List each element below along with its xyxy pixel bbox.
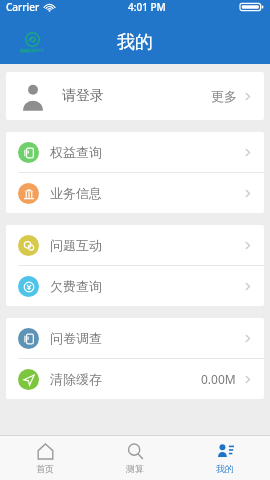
button[interactable]: 测算 (90, 436, 180, 480)
staticText: 测算 (126, 463, 144, 474)
staticText: 0.00M (201, 371, 236, 387)
staticText: 业务信息 (50, 185, 102, 201)
button[interactable]: 清除缓存 (6, 359, 264, 399)
staticText: 权益查询 (50, 144, 102, 160)
staticText: 我的 (216, 463, 234, 474)
staticText: Carrier (6, 0, 40, 14)
button[interactable]: 业务信息 (6, 173, 264, 213)
staticText: 我的 (117, 31, 153, 54)
staticText: 更多 (211, 88, 237, 104)
staticText: 问卷调查 (50, 330, 102, 346)
button[interactable]: 我的 (180, 436, 270, 480)
button[interactable]: 欠费查询 (6, 266, 264, 306)
staticText: 首页 (36, 463, 54, 474)
staticText: 海南社保中心 (20, 48, 44, 53)
staticText: 清除缓存 (50, 371, 102, 387)
button[interactable]: 请登录 (6, 72, 264, 120)
staticText: 4:01 PM (128, 0, 166, 14)
button[interactable]: Logo (14, 24, 50, 60)
button[interactable]: 问卷调查 (6, 318, 264, 358)
button[interactable]: 问题互动 (6, 225, 264, 265)
button[interactable]: 权益查询 (6, 132, 264, 172)
staticText: 请登录 (62, 87, 104, 105)
staticText: 问题互动 (50, 237, 102, 253)
staticText: 欠费查询 (50, 278, 102, 294)
button[interactable]: 首页 (0, 436, 90, 480)
